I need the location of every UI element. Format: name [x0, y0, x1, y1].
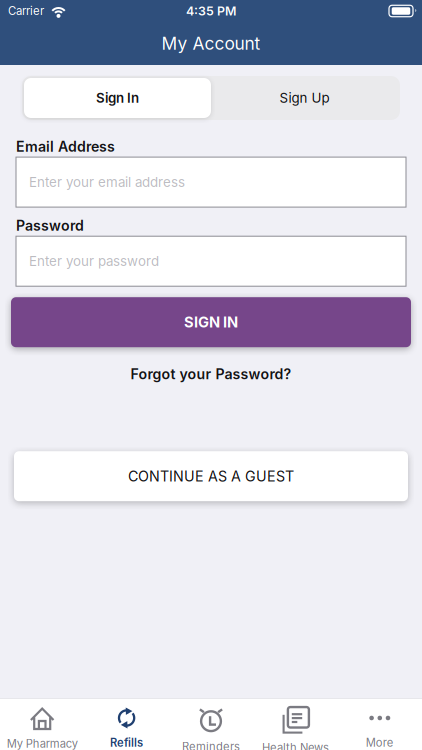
staticText: SIGN IN: [184, 313, 238, 331]
button[interactable]: Sign In: [24, 78, 211, 118]
button[interactable]: Reminders: [169, 699, 253, 750]
staticText: CONTINUE AS A GUEST: [128, 468, 294, 485]
staticText: Email Address: [16, 138, 115, 155]
button[interactable]: Sign Up: [211, 78, 398, 118]
staticText: More: [366, 736, 394, 750]
button[interactable]: Forgot your Password?: [120, 360, 301, 388]
button[interactable]: More: [338, 699, 422, 750]
staticText: Health News: [262, 741, 329, 750]
staticText: Sign In: [96, 90, 139, 106]
staticText: Enter your password: [29, 253, 159, 269]
staticText: Refills: [110, 736, 143, 750]
button[interactable]: Refills: [84, 699, 169, 750]
button[interactable]: My Pharmacy: [0, 699, 84, 750]
button[interactable]: CONTINUE AS A GUEST: [14, 451, 408, 501]
staticText: My Account: [161, 33, 260, 54]
staticText: Sign Up: [279, 90, 329, 106]
button[interactable]: Health News: [253, 699, 338, 750]
staticText: Reminders: [182, 740, 240, 750]
staticText: Forgot your Password?: [130, 366, 291, 383]
button[interactable]: SIGN IN: [11, 297, 411, 347]
staticText: My Pharmacy: [7, 737, 78, 750]
staticText: 4:35 PM: [186, 3, 236, 18]
staticText: Carrier: [8, 4, 44, 18]
staticText: Password: [16, 217, 84, 234]
staticText: Enter your email address: [29, 174, 185, 190]
